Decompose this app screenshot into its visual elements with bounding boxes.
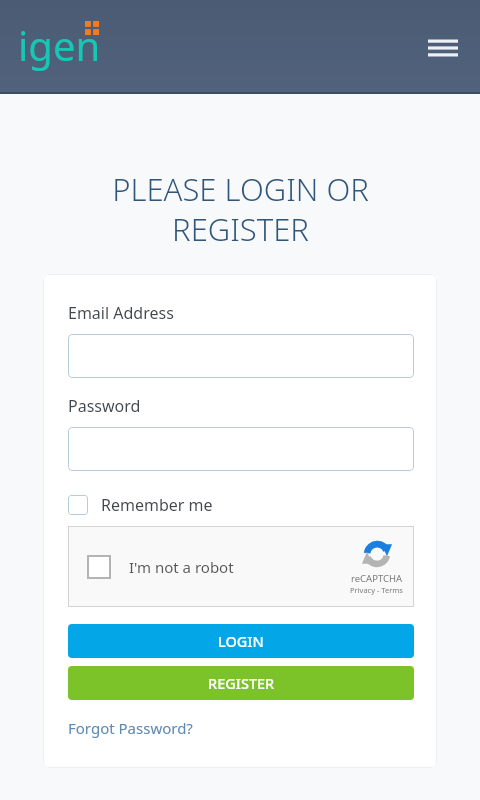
staticText: Remember me [101,494,213,516]
staticText: I'm not a robot [129,557,234,577]
staticText: PLEASE LOGIN OR REGISTER [112,168,369,250]
button[interactable]: LOGIN [68,624,414,658]
button[interactable]: Text input [68,427,414,471]
staticText: Privacy - Terms [350,585,403,595]
staticText: REGISTER [208,673,275,693]
staticText: igen [18,18,101,72]
staticText: Forgot Password? [68,718,193,738]
button[interactable]: Remember me [68,494,221,516]
button[interactable]: Text input [68,334,414,378]
staticText: LOGIN [218,631,264,651]
button[interactable]: I'm not a robot reCAPTCHA [68,526,414,607]
button[interactable]: Open navigation menu [424,29,462,67]
button[interactable]: igen home [14,18,105,72]
button[interactable]: Forgot Password? [68,716,193,740]
staticText: Email Address [68,302,174,324]
button[interactable]: REGISTER [68,666,414,700]
staticText: reCAPTCHA [351,572,403,585]
staticText: Password [68,395,141,417]
